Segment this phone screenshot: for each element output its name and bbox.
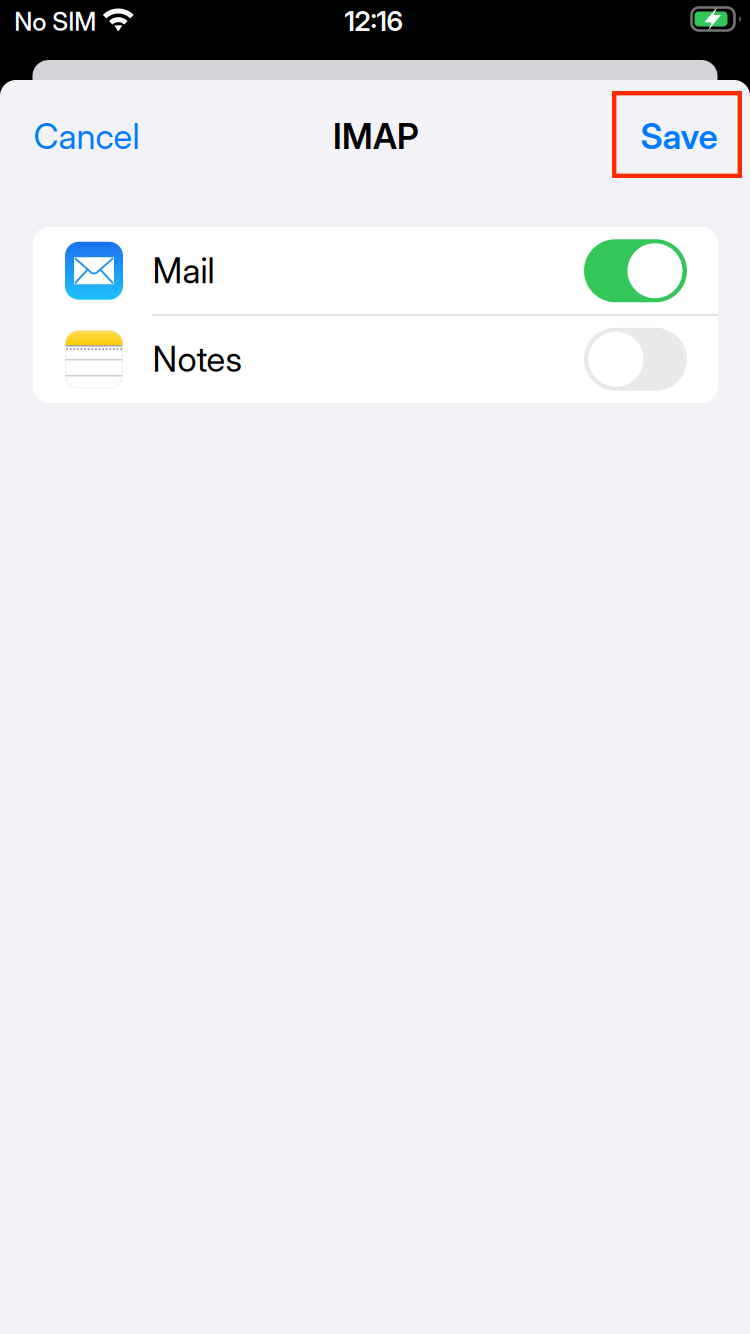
staticText: Cancel xyxy=(33,115,139,157)
staticText: Mail xyxy=(152,250,214,292)
button[interactable]: Save xyxy=(612,91,742,178)
staticText: Notes xyxy=(152,338,241,380)
staticText: 12:16 xyxy=(344,4,403,38)
button[interactable]: Mail xyxy=(33,227,718,314)
staticText: Save xyxy=(640,115,717,157)
staticText: IMAP xyxy=(333,115,419,157)
staticText: No SIM xyxy=(14,6,96,37)
button[interactable]: Notes xyxy=(33,315,718,403)
button[interactable]: Cancel xyxy=(0,93,168,180)
